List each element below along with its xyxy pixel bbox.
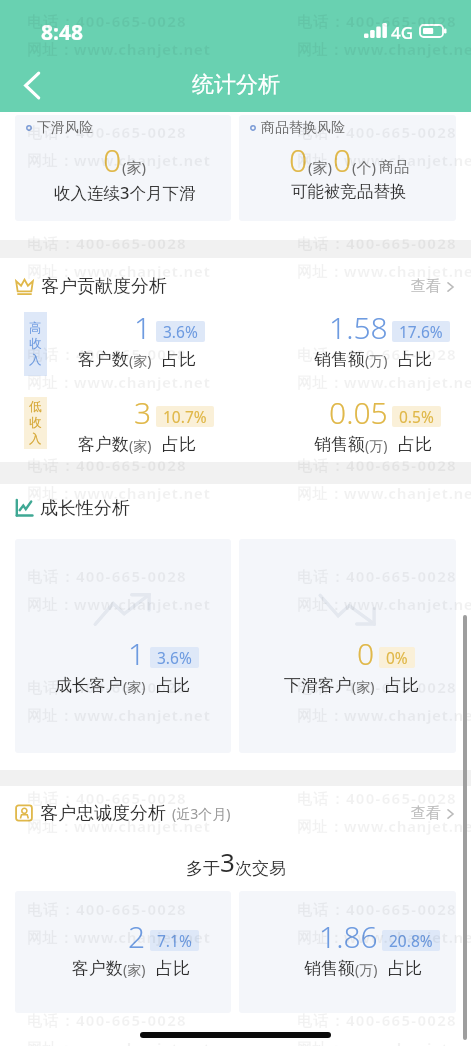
staticText: 电话：400-665-0028 bbox=[27, 677, 187, 697]
button[interactable]: Back bbox=[9, 62, 55, 108]
staticText: 3.6% bbox=[163, 321, 198, 342]
staticText: 电话：400-665-0028 bbox=[27, 566, 187, 586]
staticText: 占比 bbox=[385, 675, 419, 696]
staticText: 电话：400-665-0028 bbox=[297, 566, 457, 586]
staticText: 网址：www.chanjet.net bbox=[297, 705, 471, 725]
staticText: 电话：400-665-0028 bbox=[297, 455, 457, 475]
staticText: 2 bbox=[128, 916, 146, 957]
button[interactable]: 查看 bbox=[408, 272, 458, 301]
staticText: (万) bbox=[365, 351, 388, 370]
button[interactable] bbox=[239, 891, 456, 1013]
staticText: (家) bbox=[129, 436, 152, 455]
staticText: 网址：www.chanjet.net bbox=[27, 705, 211, 725]
staticText: 销售额 bbox=[304, 958, 355, 979]
staticText: 3 bbox=[220, 844, 235, 879]
staticText: 20.8% bbox=[389, 930, 433, 951]
button[interactable]: 查看 bbox=[408, 799, 458, 828]
staticText: 收 bbox=[29, 336, 42, 352]
staticText: 成长客户 bbox=[55, 675, 123, 696]
staticText: 3.6% bbox=[157, 647, 192, 668]
staticText: 电话：400-665-0028 bbox=[27, 344, 187, 364]
staticText: (个) bbox=[352, 157, 377, 177]
staticText: 0.5% bbox=[399, 406, 434, 427]
staticText: 收入连续3个月下滑 bbox=[54, 181, 196, 204]
staticText: 占比 bbox=[156, 675, 190, 696]
staticText: (万) bbox=[355, 960, 378, 979]
staticText: 查看 bbox=[411, 804, 441, 823]
button[interactable]: 下滑风险 bbox=[15, 115, 231, 221]
staticText: 入 bbox=[29, 431, 42, 447]
staticText: 成长性分析 bbox=[40, 497, 130, 520]
staticText: (近3个月) bbox=[172, 804, 231, 823]
staticText: 占比 bbox=[398, 349, 432, 370]
staticText: 1.86 bbox=[319, 916, 378, 957]
button[interactable] bbox=[239, 539, 456, 753]
staticText: 网址：www.chanjet.net bbox=[27, 927, 211, 947]
staticText: 网址：www.chanjet.net bbox=[27, 483, 211, 503]
staticText: 网址：www.chanjet.net bbox=[297, 261, 471, 281]
staticText: 1 bbox=[128, 633, 146, 674]
staticText: 网址：www.chanjet.net bbox=[27, 39, 211, 59]
staticText: 客户忠诚度分析 bbox=[40, 802, 166, 825]
staticText: 电话：400-665-0028 bbox=[27, 899, 187, 919]
staticText: 下滑客户 bbox=[284, 675, 352, 696]
staticText: 网址：www.chanjet.net bbox=[297, 816, 471, 836]
staticText: 占比 bbox=[162, 434, 196, 455]
staticText: 销售额 bbox=[314, 434, 365, 455]
staticText: 0 bbox=[289, 138, 308, 182]
staticText: 电话：400-665-0028 bbox=[297, 1010, 457, 1030]
staticText: 占比 bbox=[156, 958, 190, 979]
staticText: 电话：400-665-0028 bbox=[27, 11, 187, 31]
staticText: 网址：www.chanjet.net bbox=[297, 372, 471, 392]
staticText: 电话：400-665-0028 bbox=[297, 899, 457, 919]
staticText: 网址：www.chanjet.net bbox=[297, 594, 471, 614]
staticText: 电话：400-665-0028 bbox=[27, 122, 187, 142]
staticText: 客户贡献度分析 bbox=[41, 275, 167, 298]
staticText: 3 bbox=[134, 392, 152, 433]
staticText: 电话：400-665-0028 bbox=[297, 344, 457, 364]
staticText: (家) bbox=[352, 677, 375, 696]
staticText: 占比 bbox=[398, 434, 432, 455]
button[interactable] bbox=[15, 891, 231, 1013]
staticText: 0 bbox=[357, 633, 375, 674]
staticText: 0 bbox=[103, 138, 122, 182]
staticText: 多于 bbox=[186, 858, 220, 879]
staticText: 网址：www.chanjet.net bbox=[297, 483, 471, 503]
staticText: 客户数 bbox=[72, 958, 123, 979]
staticText: (家) bbox=[308, 157, 333, 177]
staticText: 电话：400-665-0028 bbox=[297, 11, 457, 31]
staticText: 网址：www.chanjet.net bbox=[27, 261, 211, 281]
button[interactable] bbox=[15, 539, 231, 753]
staticText: 可能被竞品替换 bbox=[291, 181, 407, 202]
staticText: 电话：400-665-0028 bbox=[297, 677, 457, 697]
staticText: 客户数 bbox=[78, 434, 129, 455]
staticText: 商品 bbox=[379, 158, 409, 177]
staticText: 电话：400-665-0028 bbox=[297, 233, 457, 253]
staticText: (家) bbox=[123, 960, 146, 979]
button[interactable]: 商品替换风险 bbox=[239, 115, 456, 221]
staticText: 0.05 bbox=[329, 392, 388, 433]
staticText: 电话：400-665-0028 bbox=[297, 122, 457, 142]
staticText: 1 bbox=[134, 307, 152, 348]
staticText: 占比 bbox=[388, 958, 422, 979]
staticText: 高 bbox=[29, 320, 42, 336]
staticText: (万) bbox=[365, 436, 388, 455]
staticText: 网址：www.chanjet.net bbox=[27, 372, 211, 392]
staticText: 0% bbox=[386, 647, 408, 668]
staticText: 电话：400-665-0028 bbox=[27, 1010, 187, 1030]
staticText: 网址：www.chanjet.net bbox=[27, 150, 211, 170]
staticText: 网址：www.chanjet.net bbox=[297, 1038, 471, 1046]
staticText: 收 bbox=[29, 415, 42, 431]
staticText: (家) bbox=[123, 677, 146, 696]
staticText: 17.6% bbox=[399, 321, 443, 342]
staticText: 10.7% bbox=[163, 406, 207, 427]
staticText: (家) bbox=[122, 157, 147, 177]
staticText: 入 bbox=[29, 352, 42, 368]
staticText: 销售额 bbox=[314, 349, 365, 370]
staticText: 低 bbox=[29, 399, 42, 415]
staticText: (家) bbox=[129, 351, 152, 370]
staticText: 电话：400-665-0028 bbox=[297, 788, 457, 808]
staticText: 下滑风险 bbox=[37, 119, 93, 137]
staticText: 统计分析 bbox=[192, 71, 280, 99]
staticText: 商品替换风险 bbox=[261, 119, 345, 137]
